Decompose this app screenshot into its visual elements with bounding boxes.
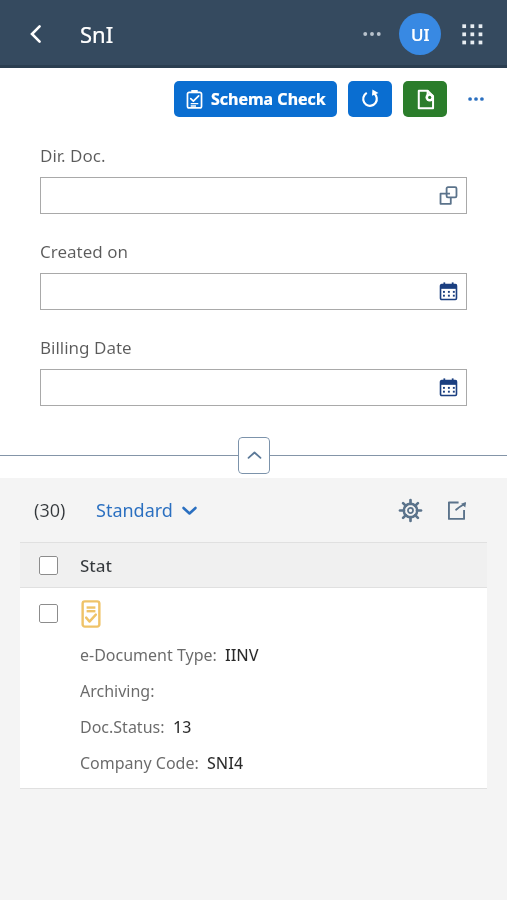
button[interactable]: Display document — [403, 81, 447, 117]
staticText: Billing Date — [40, 336, 132, 359]
button[interactable]: Settings — [393, 493, 427, 527]
staticText: Company Code: — [80, 752, 199, 774]
button[interactable]: Standard — [92, 494, 201, 527]
button[interactable]: Collapse filters — [238, 437, 270, 474]
staticText: SnI — [80, 19, 114, 49]
button[interactable]: More actions — [459, 82, 493, 116]
staticText: Stat — [80, 554, 113, 577]
staticText: Doc.Status: — [80, 716, 165, 738]
button[interactable]: Schema Check — [174, 81, 337, 117]
staticText: (30) — [34, 498, 66, 523]
staticText: Schema Check — [211, 88, 326, 110]
button[interactable]: Back — [14, 12, 58, 56]
button[interactable]: Refresh — [348, 81, 392, 117]
button[interactable] — [40, 177, 467, 214]
staticText: SNI4 — [207, 752, 244, 774]
button[interactable]: Share — [439, 493, 473, 527]
staticText: UI — [411, 23, 430, 46]
button[interactable]: More options — [351, 13, 393, 55]
staticText: IINV — [225, 644, 259, 666]
button[interactable] — [40, 273, 467, 310]
staticText: e-Document Type: — [80, 644, 217, 666]
button[interactable]: User profile — [399, 13, 441, 55]
button[interactable]: e-Document Type: — [20, 588, 487, 788]
staticText: Dir. Doc. — [40, 144, 106, 167]
button[interactable] — [40, 369, 467, 406]
staticText: 13 — [173, 716, 192, 738]
staticText: Created on — [40, 240, 128, 263]
staticText: Standard — [96, 498, 173, 523]
button[interactable]: App menu — [451, 13, 493, 55]
button[interactable]: Stat — [20, 543, 487, 587]
staticText: Archiving: — [80, 680, 155, 702]
